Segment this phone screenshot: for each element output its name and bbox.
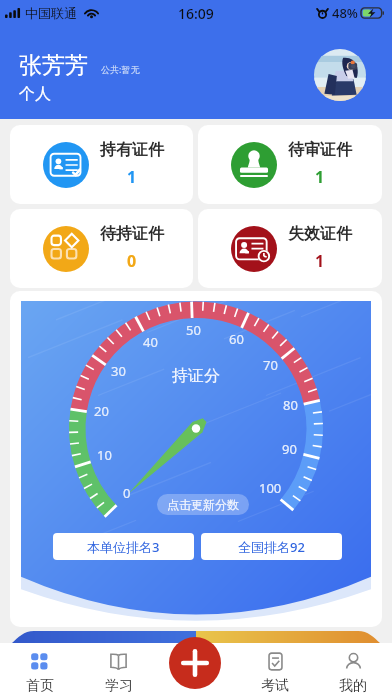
staticText: 中国联通	[25, 5, 77, 21]
staticText: 本单位排名3	[87, 538, 160, 556]
staticText: 10	[97, 446, 112, 464]
staticText: 50	[186, 321, 201, 339]
staticText: 0	[127, 250, 137, 272]
button[interactable]: 待审证件	[198, 125, 382, 204]
staticText: 16:09	[178, 4, 214, 23]
staticText: 90	[282, 440, 297, 458]
button[interactable]: 点击更新分数	[157, 494, 249, 515]
staticText: 首页	[26, 677, 54, 695]
staticText: 待审证件	[288, 140, 352, 160]
staticText: 1	[315, 166, 325, 188]
button[interactable]: 持有证件	[10, 125, 193, 204]
button[interactable]: 考试	[236, 643, 314, 696]
staticText: 30	[111, 362, 126, 380]
staticText: 失效证件	[288, 224, 352, 244]
button[interactable]: 首页	[0, 643, 79, 696]
staticText: 20	[94, 402, 109, 420]
staticText: 48%	[332, 4, 358, 22]
button[interactable]: 全国排名92	[201, 533, 342, 560]
staticText: 点击更新分数	[167, 497, 239, 512]
button[interactable]: 学习	[79, 643, 158, 696]
staticText: 公共:暂无	[101, 63, 140, 75]
staticText: 1	[315, 250, 325, 272]
staticText: 80	[283, 396, 298, 414]
button[interactable]: 失效证件	[198, 209, 382, 288]
staticText: 0	[123, 484, 131, 502]
staticText: 考试	[261, 677, 289, 695]
staticText: 个人	[19, 84, 51, 104]
staticText: 待持证件	[100, 224, 164, 244]
button[interactable]: 待持证件	[10, 209, 193, 288]
button[interactable]: 我的	[314, 643, 392, 696]
button[interactable]: Add	[169, 637, 221, 689]
staticText: 60	[229, 330, 244, 348]
button[interactable]: 本单位排名3	[53, 533, 194, 560]
staticText: 1	[127, 166, 137, 188]
staticText: 持有证件	[100, 140, 164, 160]
staticText: 100	[259, 479, 282, 497]
staticText: 40	[143, 333, 158, 351]
staticText: 70	[263, 356, 278, 374]
staticText: 全国排名92	[238, 538, 305, 556]
button[interactable]: Profile avatar	[314, 49, 366, 101]
staticText: 学习	[105, 677, 133, 695]
staticText: 张芳芳	[19, 51, 88, 80]
staticText: 我的	[339, 677, 367, 695]
staticText: 持证分	[172, 366, 220, 386]
